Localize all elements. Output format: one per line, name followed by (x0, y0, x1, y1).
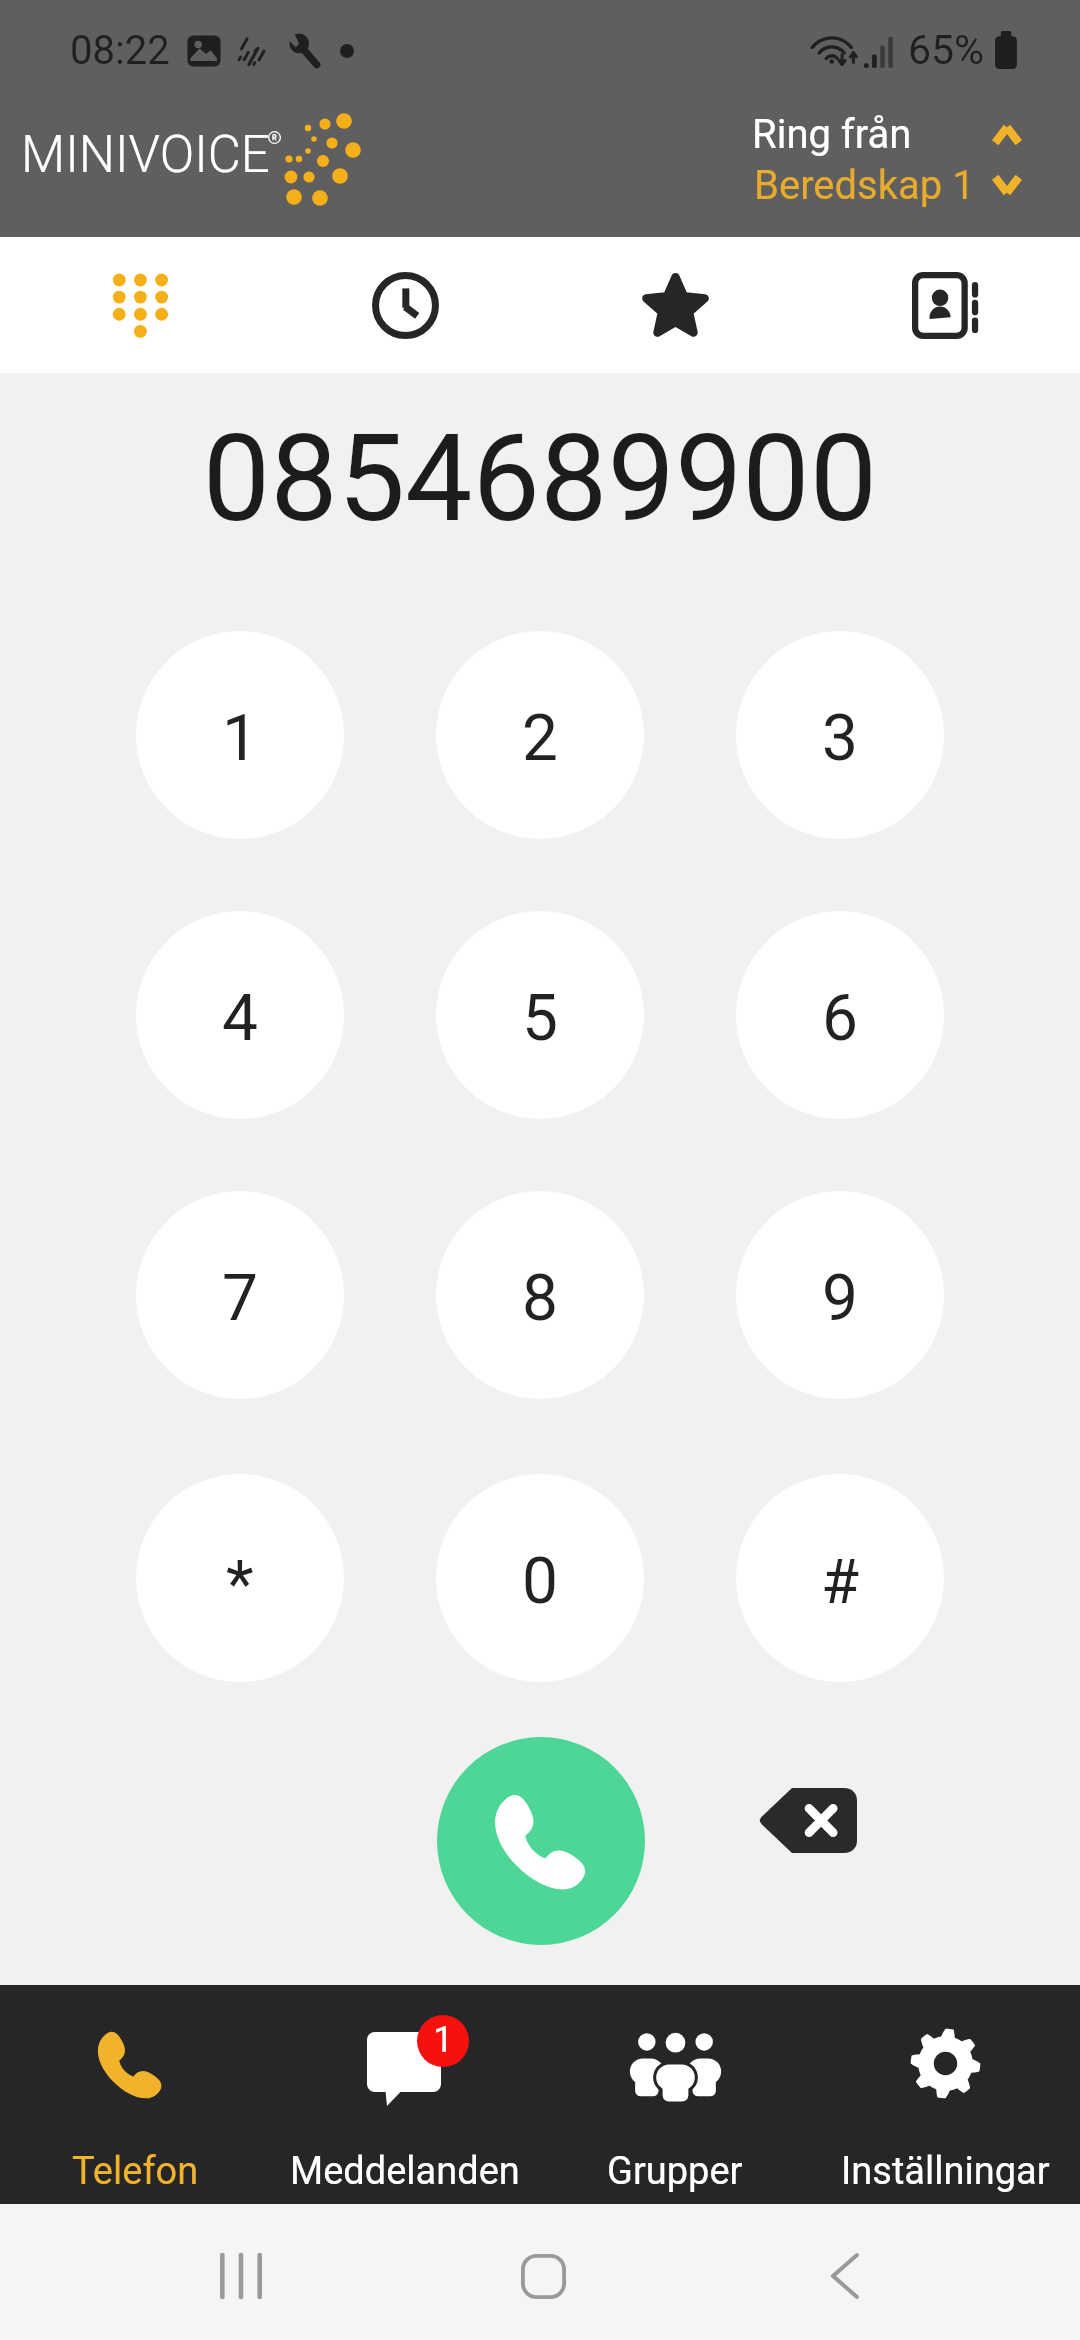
button[interactable]: 3 (736, 631, 944, 839)
button[interactable]: * (136, 1474, 344, 1682)
button[interactable]: Home (490, 2224, 596, 2328)
button[interactable]: Grupper (540, 1985, 810, 2204)
button[interactable]: 1 (136, 631, 344, 839)
staticText: Ring från (752, 111, 912, 158)
staticText: Meddelanden (290, 2149, 520, 2194)
staticText: 7 (222, 1261, 258, 1336)
staticText: Telefon (72, 2149, 199, 2194)
button[interactable]: Next line (974, 161, 1040, 209)
button[interactable]: Dialpad (0, 237, 270, 373)
staticText: 65% (908, 26, 985, 74)
button[interactable]: 1 (270, 1985, 540, 2204)
button[interactable]: 7 (136, 1191, 344, 1399)
button[interactable]: Backspace (736, 1764, 880, 1876)
staticText: 6 (822, 981, 858, 1056)
staticText: * (226, 1547, 254, 1622)
button[interactable]: Contacts (810, 237, 1080, 373)
staticText: 08:22 (70, 27, 170, 74)
staticText: 2 (522, 701, 558, 776)
button[interactable]: # (736, 1474, 944, 1682)
button[interactable]: Previous line (974, 111, 1040, 159)
staticText: Grupper (607, 2149, 743, 2194)
staticText: 9 (822, 1261, 858, 1336)
button[interactable]: Inställningar (810, 1985, 1080, 2204)
staticText: 1 (433, 2019, 454, 2061)
staticText: MINIVOICE (21, 125, 270, 185)
staticText: 5 (522, 981, 558, 1056)
button[interactable]: 8 (436, 1191, 644, 1399)
button[interactable]: 5 (436, 911, 644, 1119)
staticText: # (821, 1545, 860, 1618)
button[interactable]: Recent calls (270, 237, 540, 373)
staticText: 8 (522, 1261, 558, 1336)
staticText: 4 (222, 981, 258, 1056)
staticText: 0854689900 (0, 409, 1080, 550)
button[interactable]: Back (792, 2224, 898, 2328)
button[interactable]: 6 (736, 911, 944, 1119)
button[interactable]: 9 (736, 1191, 944, 1399)
staticText: 1 (222, 701, 258, 776)
staticText: Beredskap 1 (754, 162, 975, 209)
button[interactable]: Favorites (540, 237, 810, 373)
staticText: 3 (822, 701, 858, 776)
staticText: Inställningar (841, 2149, 1050, 2194)
button[interactable]: Call (437, 1737, 645, 1945)
button[interactable]: Ring från (744, 104, 970, 216)
button[interactable]: 0 (436, 1474, 644, 1682)
staticText: 0 (522, 1544, 558, 1619)
button[interactable]: 4 (136, 911, 344, 1119)
button[interactable]: 2 (436, 631, 644, 839)
button[interactable]: Telefon (0, 1985, 270, 2204)
button[interactable]: Recents (188, 2226, 294, 2326)
